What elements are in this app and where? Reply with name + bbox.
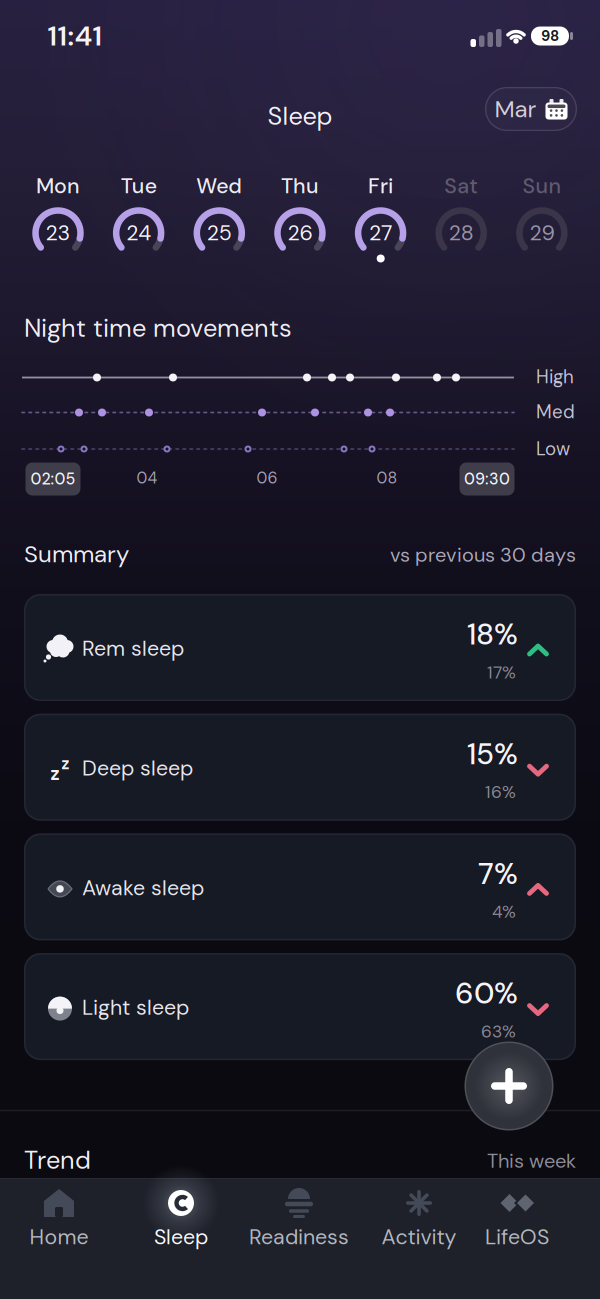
button[interactable]: Wed: [185, 172, 253, 268]
staticText: z: [50, 762, 59, 786]
button[interactable]: z: [24, 714, 576, 821]
button[interactable]: Add: [464, 1041, 553, 1130]
staticText: z: [61, 753, 69, 774]
button[interactable]: Tue: [105, 172, 173, 268]
staticText: Home: [29, 1223, 88, 1251]
staticText: 63%: [481, 1021, 516, 1043]
button[interactable]: Rem sleep: [24, 594, 576, 701]
staticText: 18%: [467, 616, 518, 653]
staticText: 04: [136, 468, 157, 488]
staticText: 17%: [487, 661, 516, 683]
staticText: Wed: [196, 172, 242, 200]
staticText: 24: [126, 219, 151, 247]
staticText: 08: [376, 468, 397, 488]
staticText: Mar: [494, 94, 536, 124]
staticText: 15%: [467, 736, 518, 773]
staticText: Deep sleep: [82, 755, 193, 782]
staticText: vs previous 30 days: [390, 542, 576, 568]
staticText: Sleep: [154, 1223, 208, 1251]
staticText: 29: [529, 219, 554, 247]
staticText: Summary: [24, 539, 129, 569]
staticText: 23: [45, 219, 70, 247]
staticText: 25: [207, 219, 232, 247]
staticText: LifeOS: [485, 1223, 549, 1251]
staticText: Low: [536, 437, 570, 461]
staticText: 02:05: [30, 469, 75, 489]
staticText: 26: [287, 219, 312, 247]
staticText: 16%: [485, 781, 516, 803]
button[interactable]: Light sleep: [24, 953, 576, 1060]
staticText: Light sleep: [82, 994, 189, 1021]
staticText: Fri: [368, 172, 393, 200]
button[interactable]: Activity: [362, 1178, 476, 1250]
staticText: Tue: [121, 172, 157, 200]
staticText: 11:41: [47, 18, 102, 54]
staticText: Night time movements: [24, 312, 292, 344]
button[interactable]: Sat: [427, 172, 495, 268]
button[interactable]: Mon: [24, 172, 92, 268]
staticText: 28: [449, 219, 474, 247]
staticText: Thu: [281, 172, 319, 200]
staticText: Activity: [381, 1223, 456, 1251]
staticText: 27: [369, 219, 392, 247]
staticText: Sleep: [267, 100, 332, 132]
button[interactable]: Awake sleep: [24, 833, 576, 940]
button[interactable]: LifeOS: [460, 1178, 574, 1250]
button[interactable]: Mar: [485, 87, 577, 131]
button[interactable]: Sun: [508, 172, 576, 268]
button[interactable]: Sleep: [124, 1178, 238, 1250]
staticText: 98: [541, 27, 559, 45]
button[interactable]: Fri: [347, 172, 415, 268]
button[interactable]: Readiness: [242, 1178, 356, 1250]
staticText: Readiness: [249, 1223, 349, 1251]
staticText: 09:30: [464, 469, 510, 489]
staticText: 06: [256, 468, 277, 488]
button[interactable]: Home: [2, 1178, 116, 1250]
staticText: Rem sleep: [82, 635, 184, 662]
staticText: Sat: [444, 172, 478, 200]
staticText: High: [536, 365, 574, 389]
staticText: 60%: [455, 975, 518, 1012]
staticText: Mon: [36, 172, 80, 200]
staticText: Med: [536, 400, 575, 424]
staticText: Sun: [522, 172, 561, 200]
button[interactable]: Thu: [266, 172, 334, 268]
staticText: This week: [487, 1148, 576, 1174]
staticText: Awake sleep: [82, 874, 204, 901]
staticText: 4%: [492, 901, 516, 923]
staticText: Trend: [24, 1144, 91, 1176]
staticText: 7%: [478, 855, 518, 892]
